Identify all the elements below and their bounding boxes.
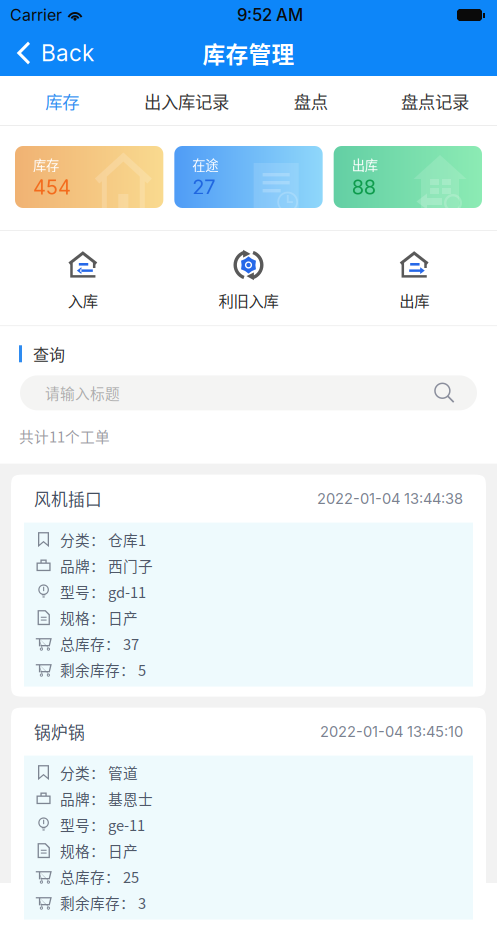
button[interactable]: 盘点记录 [373, 76, 497, 126]
button[interactable]: 库存 [0, 76, 124, 126]
staticText: 风机插口 [34, 486, 102, 511]
staticText: 库存管理 [202, 37, 294, 69]
staticText: 型号： gd-11 [60, 581, 146, 602]
staticText: 盘点记录 [401, 88, 469, 114]
button[interactable]: 请输入标题 [20, 375, 477, 410]
button[interactable]: 出库 [331, 249, 497, 311]
staticText: 型号： ge-11 [60, 814, 145, 835]
staticText: 2022-01-04 13:44:38 [317, 490, 463, 507]
staticText: 2022-01-04 13:45:10 [320, 723, 463, 740]
staticText: 库存 [45, 88, 79, 114]
staticText: 库存 [33, 155, 59, 174]
staticText: 剩余库存： 5 [60, 659, 146, 680]
staticText: 分类： 管道 [60, 762, 138, 783]
button[interactable]: 盘点 [248, 76, 373, 126]
staticText: 规格： 日产 [60, 607, 138, 628]
staticText: 在途 [192, 155, 218, 174]
button[interactable]: 锅炉锅 [11, 708, 486, 930]
staticText: 9:52 AM [237, 5, 303, 25]
staticText: 品牌： 西门子 [60, 555, 153, 576]
staticText: 利旧入库 [218, 289, 278, 311]
staticText: 分类： 仓库1 [60, 529, 146, 550]
staticText: 454 [33, 175, 71, 199]
staticText: 总库存： 25 [60, 866, 139, 887]
staticText: 剩余库存： 3 [60, 892, 146, 913]
button[interactable]: 入库 [0, 249, 166, 311]
staticText: Back [41, 39, 94, 67]
button[interactable]: 利旧入库 [166, 249, 331, 311]
button[interactable]: 出库 [334, 146, 482, 208]
staticText: 品牌： 基恩士 [60, 788, 153, 809]
button[interactable]: 库存 [15, 146, 163, 208]
button[interactable]: Back [0, 30, 106, 76]
staticText: 盘点 [294, 88, 328, 114]
button[interactable]: 出入库记录 [124, 76, 248, 126]
staticText: 共计11个工单 [19, 425, 110, 447]
staticText: Carrier [10, 5, 62, 25]
staticText: 出入库记录 [144, 88, 229, 114]
staticText: 规格： 日产 [60, 840, 138, 861]
staticText: 出库 [399, 289, 429, 311]
staticText: 27 [192, 175, 215, 199]
button[interactable]: 风机插口 [11, 475, 486, 697]
staticText: 88 [352, 175, 376, 199]
staticText: 出库 [352, 155, 378, 174]
staticText: 入库 [68, 289, 98, 311]
staticText: 总库存： 37 [60, 633, 139, 654]
button[interactable]: 在途 [174, 146, 323, 208]
staticText: 锅炉锅 [34, 719, 85, 744]
staticText: 请输入标题 [45, 382, 120, 403]
staticText: 查询 [33, 342, 65, 365]
